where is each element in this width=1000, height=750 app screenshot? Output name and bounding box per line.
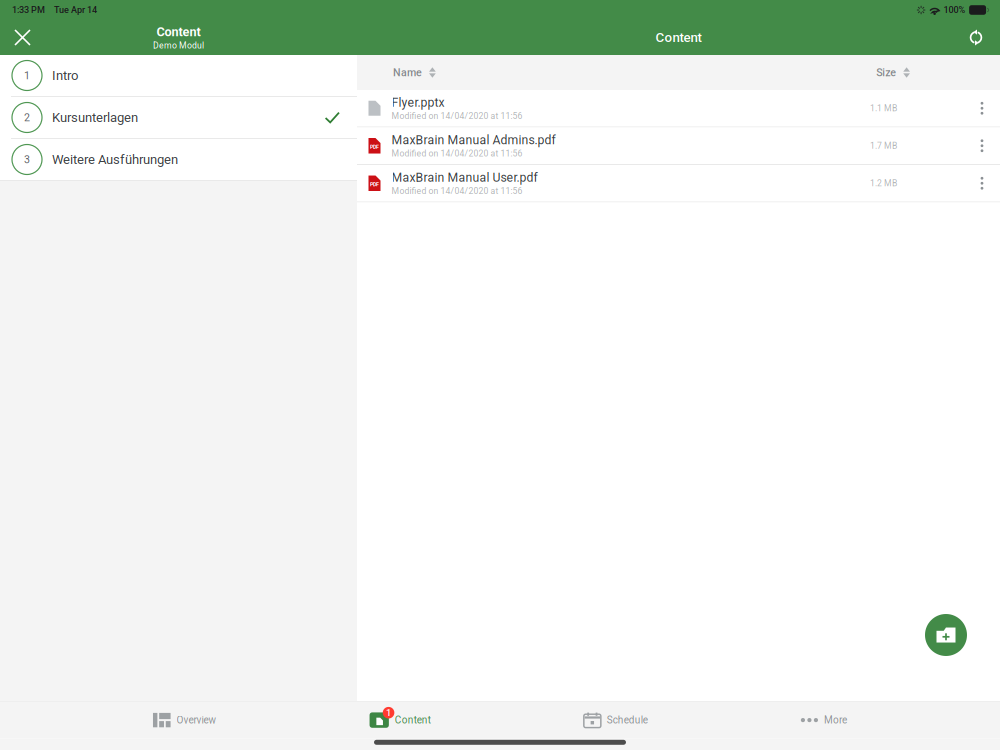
- staticText: MaxBrain Manual Admins.pdf: [391, 133, 555, 147]
- button[interactable]: PDF: [357, 165, 1000, 201]
- button[interactable]: Size: [876, 66, 910, 79]
- staticText: Modified on 14/04/2020 at 11:56: [391, 111, 522, 121]
- staticText: Weitere Ausführungen: [52, 152, 178, 167]
- staticText: 1.7 MB: [870, 141, 897, 151]
- staticText: Tue Apr 14: [54, 5, 97, 15]
- staticText: Overview: [177, 714, 217, 726]
- button[interactable]: Overview: [153, 702, 217, 739]
- button[interactable]: 1: [0, 55, 357, 96]
- button[interactable]: More options: [972, 90, 992, 126]
- staticText: Content: [655, 30, 701, 45]
- button[interactable]: New folder: [925, 614, 967, 656]
- staticText: 3: [24, 153, 30, 166]
- button[interactable]: More options: [972, 165, 992, 201]
- button[interactable]: Name: [393, 66, 436, 79]
- staticText: Kursunterlagen: [52, 110, 138, 125]
- staticText: 1: [24, 69, 30, 82]
- staticText: 1: [386, 707, 391, 718]
- staticText: 1.1 MB: [870, 103, 897, 113]
- button[interactable]: PDF: [357, 127, 1000, 164]
- staticText: Demo Modul: [153, 40, 204, 50]
- button[interactable]: Close: [0, 20, 45, 55]
- button[interactable]: 3: [0, 139, 357, 180]
- staticText: 1:33 PM: [12, 5, 45, 15]
- button[interactable]: More options: [972, 128, 992, 164]
- button[interactable]: More: [801, 702, 847, 739]
- staticText: Content: [395, 714, 431, 726]
- staticText: MaxBrain Manual User.pdf: [391, 170, 537, 185]
- staticText: 100%: [944, 5, 966, 15]
- staticText: Modified on 14/04/2020 at 11:56: [391, 148, 522, 159]
- staticText: Modified on 14/04/2020 at 11:56: [391, 186, 522, 196]
- staticText: Intro: [52, 68, 78, 83]
- button[interactable]: Refresh: [955, 20, 997, 55]
- staticText: Size: [876, 66, 896, 79]
- staticText: Content: [156, 24, 200, 39]
- button[interactable]: 1: [370, 702, 431, 739]
- button[interactable]: Schedule: [584, 702, 648, 739]
- button[interactable]: 2: [0, 97, 357, 138]
- staticText: Flyer.pptx: [391, 95, 444, 110]
- staticText: PDF: [370, 144, 379, 150]
- staticText: Schedule: [607, 714, 648, 726]
- staticText: 1.2 MB: [870, 178, 897, 188]
- staticText: 2: [24, 111, 30, 124]
- staticText: PDF: [370, 181, 379, 187]
- button[interactable]: Flyer.pptx: [357, 90, 1000, 126]
- staticText: More: [824, 714, 847, 726]
- staticText: Name: [393, 66, 422, 79]
